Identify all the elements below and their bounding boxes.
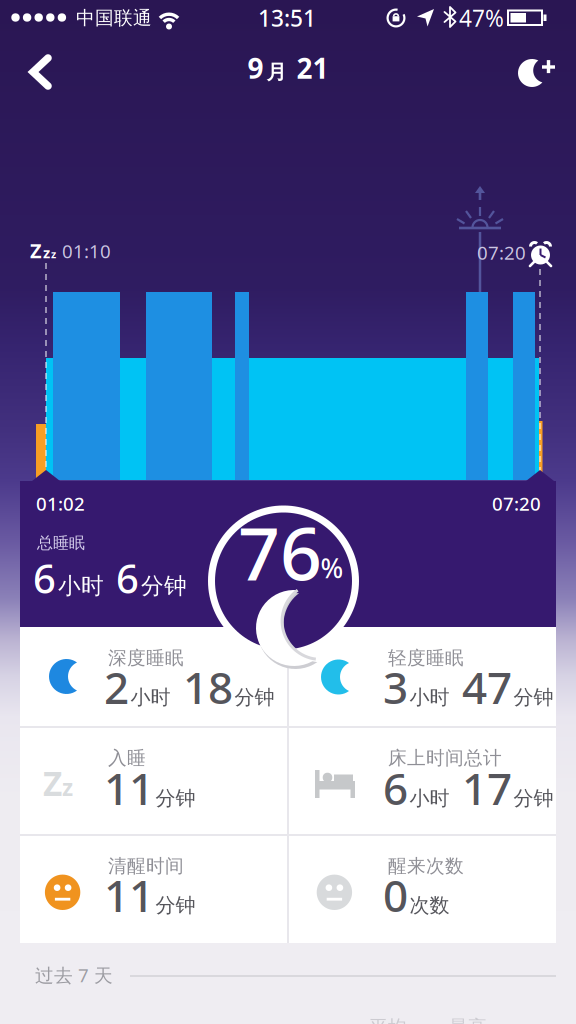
- staticText: 分钟: [234, 685, 274, 710]
- staticText: 分钟: [155, 786, 195, 811]
- staticText: 11: [104, 759, 154, 817]
- staticText: 平均: [369, 1015, 407, 1024]
- staticText: 次数: [409, 893, 449, 918]
- button[interactable]: Add sleep: [506, 45, 562, 101]
- button[interactable]: Back: [12, 44, 68, 100]
- staticText: 小时: [409, 685, 449, 710]
- staticText: 醒来次数: [388, 854, 464, 877]
- staticText: 深度睡眠: [108, 646, 184, 669]
- staticText: 01:02: [36, 491, 85, 516]
- staticText: 月: [266, 60, 286, 84]
- staticText: 最高: [449, 1015, 487, 1024]
- staticText: 入睡: [108, 746, 146, 769]
- staticText: 47%: [459, 3, 504, 33]
- staticText: 0: [383, 866, 408, 924]
- staticText: %: [320, 550, 343, 586]
- staticText: 轻度睡眠: [388, 646, 464, 669]
- staticText: 11: [104, 866, 154, 924]
- staticText: z: [51, 247, 56, 261]
- staticText: 01:10: [57, 239, 111, 263]
- staticText: 小时: [58, 572, 104, 600]
- staticText: 47: [451, 658, 512, 716]
- staticText: 过去 7 天: [35, 963, 113, 987]
- staticText: Z: [43, 761, 62, 805]
- staticText: 07:20: [492, 491, 541, 516]
- staticText: 分钟: [513, 786, 553, 811]
- staticText: 6: [106, 551, 139, 604]
- staticText: 小时: [130, 685, 170, 710]
- staticText: z: [43, 243, 50, 262]
- staticText: 分钟: [141, 572, 187, 600]
- staticText: 分钟: [513, 685, 553, 710]
- staticText: 9: [247, 49, 263, 87]
- staticText: Z: [30, 237, 42, 264]
- staticText: 2: [104, 658, 129, 716]
- staticText: 床上时间总计: [388, 746, 502, 769]
- staticText: 76: [238, 503, 322, 601]
- staticText: 6: [33, 551, 56, 604]
- staticText: 小时: [409, 786, 449, 811]
- staticText: 13:51: [258, 3, 316, 33]
- staticText: 中国联通: [76, 6, 152, 29]
- staticText: z: [62, 772, 73, 802]
- staticText: 18: [172, 658, 233, 716]
- staticText: 总睡眠: [37, 533, 85, 553]
- staticText: 清醒时间: [108, 854, 184, 877]
- staticText: 6: [383, 759, 408, 817]
- staticText: 3: [383, 658, 408, 716]
- staticText: 21: [289, 49, 328, 87]
- staticText: 17: [451, 759, 512, 817]
- staticText: 分钟: [155, 893, 195, 918]
- staticText: 07:20: [477, 240, 526, 265]
